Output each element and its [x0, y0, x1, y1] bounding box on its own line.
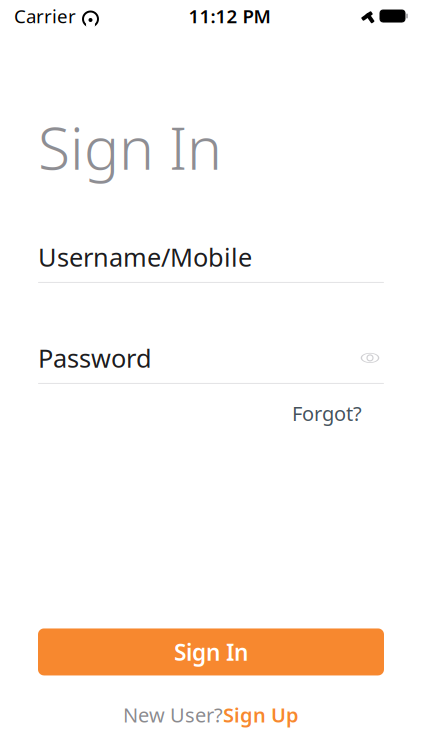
staticText: 11:12 PM	[188, 4, 270, 28]
button[interactable]: Sign Up	[223, 697, 299, 732]
button[interactable]: Sign In	[38, 628, 384, 675]
button[interactable]: Forgot?	[288, 396, 366, 430]
staticText: Carrier	[14, 4, 76, 28]
staticText: Sign In	[38, 108, 222, 186]
staticText: Username/Mobile	[38, 240, 252, 274]
staticText: Sign Up	[223, 701, 299, 728]
staticText: Forgot?	[292, 400, 362, 426]
staticText: Sign In	[174, 637, 248, 667]
staticText: New User?	[123, 701, 223, 728]
staticText: Password	[38, 341, 152, 375]
button[interactable]: Show password	[356, 346, 384, 370]
